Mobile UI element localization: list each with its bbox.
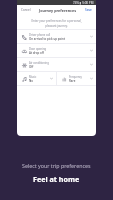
staticText: Cancel (21, 8, 31, 12)
staticText: Journey preferences (39, 8, 77, 13)
button[interactable]: Door opening (17, 44, 96, 57)
staticText: Air conditioning (29, 61, 49, 65)
staticText: Driver phone call (29, 33, 51, 37)
staticText: Enter your preferences for a personal, p… (25, 19, 88, 28)
staticText: Select your trip preferences (22, 162, 91, 169)
button[interactable]: Music (17, 72, 56, 85)
staticText: No (29, 79, 34, 83)
staticText: Feel at home (33, 174, 80, 184)
staticText: Music (29, 75, 37, 79)
button[interactable]: Cancel (20, 7, 32, 13)
button[interactable]: Air conditioning (17, 58, 96, 71)
staticText: Save (85, 8, 92, 12)
other: Expand (50, 77, 53, 80)
staticText: At drop off (29, 51, 44, 55)
other: Expand (90, 63, 93, 66)
other: Expand (90, 77, 93, 80)
button[interactable]: Save (84, 7, 93, 13)
button[interactable]: Frequency (57, 72, 96, 85)
staticText: Frequency (69, 75, 82, 79)
staticText: Door opening (29, 47, 47, 51)
staticText: Rare (69, 79, 76, 83)
other: Expand (90, 49, 93, 52)
button[interactable]: Driver phone call (17, 30, 96, 43)
staticText: 74% ▮ 5:00 PM (73, 1, 94, 5)
staticText: On arrival to pick up point (29, 37, 66, 41)
other: Expand (90, 35, 93, 38)
staticText: Off (29, 65, 34, 69)
